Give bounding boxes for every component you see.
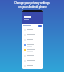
staticText: on your Android phone [18,5,47,9]
staticText: Change your privacy settings [14,1,50,5]
button[interactable] [22,59,43,64]
button[interactable] [22,38,43,43]
button[interactable] [22,24,43,29]
button[interactable] [22,64,43,69]
button[interactable] [22,54,43,59]
button[interactable] [22,33,43,38]
button[interactable] [22,43,43,48]
button[interactable] [22,48,43,53]
button[interactable] [22,28,43,33]
